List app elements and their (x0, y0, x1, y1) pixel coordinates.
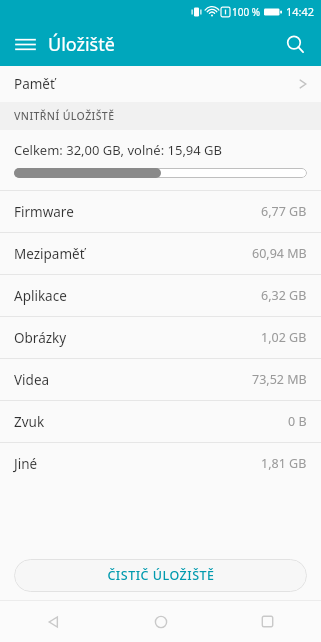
button[interactable]: ČISTIČ ÚLOŽIŠTĚ (14, 559, 307, 592)
button[interactable]: Back (0, 601, 107, 642)
staticText: 14:42 (286, 4, 315, 19)
staticText: 6,32 GB (261, 287, 307, 304)
button[interactable]: Obrázky (0, 317, 321, 358)
staticText: Paměť (14, 75, 55, 93)
staticText: 6,77 GB (261, 203, 307, 220)
staticText: Zvuk (14, 413, 45, 431)
staticText: Jiné (14, 455, 38, 473)
staticText: Aplikace (14, 287, 67, 305)
staticText: 1,02 GB (261, 329, 307, 346)
button[interactable]: Jiné (0, 443, 321, 484)
staticText: Videa (14, 371, 50, 389)
button[interactable]: Aplikace (0, 275, 321, 316)
staticText: ČISTIČ ÚLOŽIŠTĚ (107, 567, 215, 584)
button[interactable]: Videa (0, 359, 321, 400)
button[interactable]: Mezipaměť (0, 233, 321, 274)
button[interactable]: Search (279, 28, 311, 60)
button[interactable]: Paměť (0, 66, 321, 102)
button[interactable]: Recent apps (214, 601, 321, 642)
staticText: Mezipaměť (14, 245, 85, 263)
button[interactable]: Zvuk (0, 401, 321, 442)
staticText: 100 % (232, 5, 261, 19)
staticText: Celkem: 32,00 GB, volné: 15,94 GB (14, 141, 223, 159)
staticText: VNITŘNÍ ÚLOŽIŠTĚ (14, 109, 115, 123)
staticText: Firmware (14, 203, 74, 221)
staticText: 0 B (288, 413, 307, 430)
staticText: 73,52 MB (252, 371, 307, 388)
button[interactable]: Firmware (0, 191, 321, 232)
staticText: 1,81 GB (261, 455, 307, 472)
staticText: 60,94 MB (252, 245, 307, 262)
button[interactable]: Home (107, 601, 214, 642)
button[interactable]: Navigation menu (10, 29, 40, 59)
staticText: Úložiště (48, 32, 115, 57)
staticText: Obrázky (14, 329, 67, 347)
